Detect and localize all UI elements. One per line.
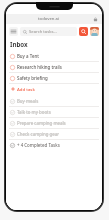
staticText: Prepare camping meals — [17, 120, 66, 126]
staticText: Check camping gear — [17, 131, 60, 137]
staticText: Research hiking trails — [17, 64, 62, 70]
staticText: Inbox — [10, 40, 28, 48]
button[interactable]: Buy a Tent — [9, 51, 99, 61]
button[interactable]: Search — [79, 27, 88, 36]
button[interactable]: Talk to my boots — [9, 107, 99, 117]
button[interactable]: Safety briefing — [9, 73, 99, 83]
staticText: Buy meals — [17, 98, 39, 104]
button[interactable]: Address bar — [6, 14, 102, 24]
button[interactable]: Profile — [90, 27, 99, 36]
button[interactable]: Check camping gear — [9, 129, 99, 139]
button[interactable]: Search tasks... — [20, 27, 77, 36]
button[interactable]: + 4 Completed Tasks — [9, 140, 99, 150]
button[interactable]: Add task — [9, 84, 99, 94]
staticText: Safety briefing — [17, 75, 48, 81]
staticText: todoven.ai — [38, 16, 60, 22]
staticText: + 4 Completed Tasks — [17, 142, 60, 148]
staticText: Buy a Tent — [17, 53, 39, 59]
staticText: Search tasks... — [29, 29, 57, 35]
button[interactable]: Buy meals — [9, 96, 99, 106]
staticText: Talk to my boots — [17, 109, 51, 115]
button[interactable]: Research hiking trails — [9, 62, 99, 72]
button[interactable]: Menu — [9, 27, 18, 36]
button[interactable]: Prepare camping meals — [9, 118, 99, 128]
staticText: Add task — [17, 86, 35, 92]
